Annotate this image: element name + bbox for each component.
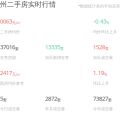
- staticText: 0063: [0, 17, 12, 25]
- staticText: 30天新增在售: [45, 55, 69, 60]
- button[interactable]: 1528: [93, 43, 120, 60]
- staticText: 新房均价参考: [0, 81, 24, 86]
- staticText: 环比上月: [93, 81, 109, 86]
- staticText: %: [106, 20, 109, 25]
- staticText: 2872: [45, 94, 57, 102]
- staticText: 1528: [93, 43, 105, 51]
- button[interactable]: 13335: [45, 43, 93, 60]
- staticText: 元/㎡: [12, 72, 21, 77]
- button[interactable]: 0063: [0, 17, 45, 34]
- staticText: 均价环比上月: [93, 29, 117, 34]
- staticText: 今年成交量: [93, 106, 113, 111]
- staticText: %: [104, 72, 107, 77]
- staticText: 套: [15, 46, 19, 51]
- staticText: 5: [0, 94, 3, 102]
- button[interactable]: 73827: [93, 94, 120, 111]
- staticText: *数据统计来自手动买卖: [78, 3, 120, 9]
- staticText: 套: [3, 97, 7, 102]
- button[interactable]: -0.43: [93, 17, 120, 34]
- staticText: 套: [57, 97, 61, 102]
- button[interactable]: 5: [0, 94, 45, 111]
- button[interactable]: 2872: [45, 94, 93, 111]
- staticText: 二手房均价: [0, 29, 20, 34]
- button[interactable]: 1.19: [93, 69, 120, 86]
- staticText: 今日成交量: [0, 106, 20, 111]
- staticText: 73827: [93, 94, 108, 102]
- staticText: 37016: [0, 43, 15, 51]
- staticText: -0.43: [93, 17, 106, 25]
- staticText: 2417: [0, 69, 12, 77]
- staticText: 州二手房实时行情: [0, 0, 56, 9]
- staticText: 30天成交量: [93, 55, 113, 60]
- staticText: 在售房源: [0, 55, 16, 60]
- staticText: 13335: [45, 43, 60, 51]
- staticText: 1.19: [93, 69, 104, 77]
- staticText: 套: [105, 46, 109, 51]
- staticText: 套: [108, 97, 112, 102]
- button[interactable]: 37016: [0, 43, 45, 60]
- staticText: 套: [60, 46, 64, 51]
- staticText: 元/㎡: [12, 20, 21, 25]
- staticText: 本月成交量: [45, 106, 65, 111]
- button[interactable]: 2417: [0, 69, 45, 86]
